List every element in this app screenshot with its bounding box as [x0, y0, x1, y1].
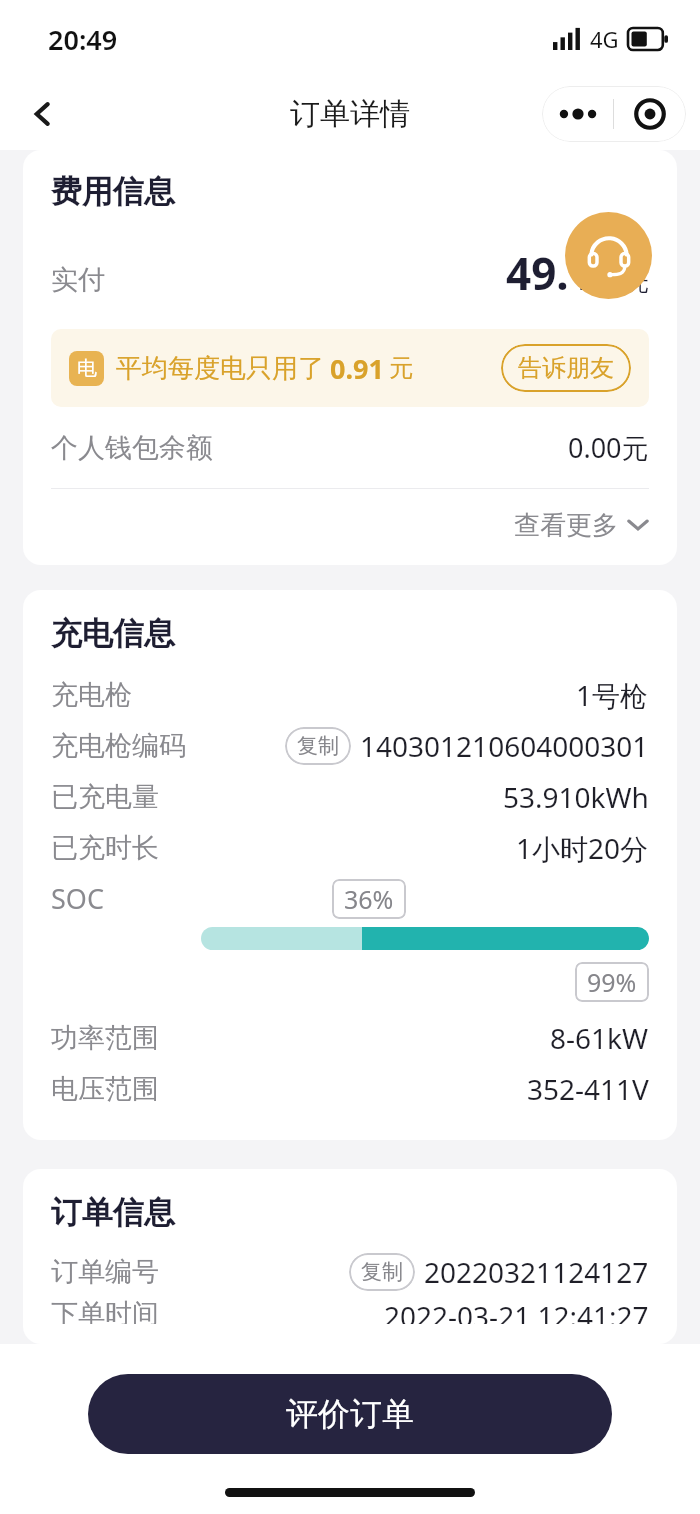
staticText: 复制	[361, 1259, 403, 1285]
staticText: 99%	[587, 965, 637, 999]
staticText: 1号枪	[576, 676, 649, 714]
staticText: 2022-03-21 12:41:27	[384, 1297, 649, 1324]
staticText: 20220321124127	[424, 1253, 649, 1291]
staticText: 8-61kW	[550, 1019, 649, 1057]
staticText: 订单信息	[51, 1193, 175, 1232]
staticText: 49.18	[506, 243, 620, 303]
button[interactable]: 关闭	[614, 86, 686, 142]
staticText: 已充电量	[51, 780, 159, 814]
staticText: 充电枪	[51, 678, 132, 712]
staticText: 4G	[590, 24, 619, 54]
staticText: 0.91	[330, 350, 384, 387]
button[interactable]: 评价订单	[88, 1374, 612, 1454]
staticText: 1小时20分	[516, 829, 649, 867]
staticText: 140301210604000301	[360, 727, 649, 765]
staticText: 元	[627, 270, 649, 298]
staticText: 已充时长	[51, 831, 159, 865]
staticText: 复制	[297, 733, 339, 759]
staticText: 53.910kWh	[503, 778, 649, 816]
staticText: 功率范围	[51, 1021, 159, 1055]
staticText: SOC	[51, 880, 104, 917]
button[interactable]: 查看更多	[51, 489, 649, 561]
staticText: 平均每度电只用了	[116, 352, 324, 385]
button[interactable]: 电	[51, 329, 649, 407]
staticText: 下单时间	[51, 1297, 159, 1324]
staticText: 36%	[344, 882, 394, 916]
staticText: 元	[389, 353, 413, 383]
button[interactable]: 复制	[285, 727, 351, 765]
button[interactable]: 返回	[14, 85, 72, 143]
staticText: 0.00元	[568, 429, 649, 466]
staticText: 实付	[51, 263, 105, 297]
staticText: 查看更多	[514, 509, 618, 542]
staticText: 20:49	[48, 21, 118, 58]
staticText: 订单编号	[51, 1255, 159, 1289]
button[interactable]: 更多	[542, 86, 613, 142]
staticText: 费用信息	[51, 172, 175, 211]
staticText: 电	[77, 356, 97, 381]
staticText: 订单详情	[290, 95, 410, 133]
staticText: 充电信息	[51, 614, 175, 653]
staticText: 352-411V	[527, 1070, 649, 1108]
button[interactable]: 复制	[349, 1253, 415, 1291]
staticText: 电压范围	[51, 1072, 159, 1106]
staticText: 个人钱包余额	[51, 431, 213, 465]
staticText: 评价订单	[286, 1394, 414, 1434]
staticText: 充电枪编码	[51, 729, 186, 763]
button[interactable]: 客服	[565, 212, 652, 299]
staticText: 告诉朋友	[518, 353, 614, 383]
button[interactable]: 告诉朋友	[501, 344, 631, 392]
